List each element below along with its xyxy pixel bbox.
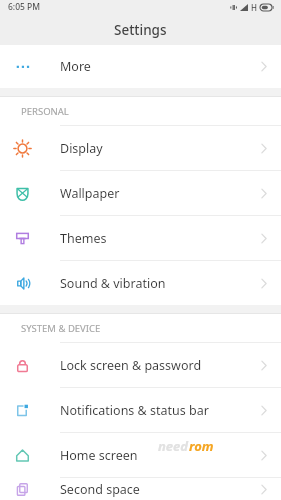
button[interactable]: Lock screen & password: [0, 343, 281, 387]
staticText: Notifications & status bar: [60, 402, 261, 419]
button[interactable]: Notifications & status bar: [0, 388, 281, 432]
staticText: SYSTEM & DEVICE: [21, 322, 101, 335]
button[interactable]: Second space: [0, 478, 281, 500]
staticText: Sound & vibration: [60, 275, 261, 292]
staticText: Display: [60, 140, 261, 157]
staticText: rom: [189, 437, 214, 455]
staticText: Second space: [60, 481, 261, 498]
staticText: Themes: [60, 230, 261, 247]
button[interactable]: Sound & vibration: [0, 261, 281, 305]
button[interactable]: Themes: [0, 216, 281, 260]
staticText: 6:05 PM: [8, 1, 41, 13]
staticText: PERSONAL: [21, 105, 69, 118]
staticText: Lock screen & password: [60, 357, 261, 374]
staticText: need: [158, 437, 189, 455]
staticText: More: [60, 58, 261, 75]
staticText: H: [251, 2, 257, 13]
button[interactable]: Wallpaper: [0, 171, 281, 215]
button[interactable]: Display: [0, 126, 281, 170]
staticText: Home screen: [60, 447, 261, 464]
staticText: Settings: [114, 21, 167, 39]
staticText: Wallpaper: [60, 185, 261, 202]
button[interactable]: Home screen: [0, 433, 281, 477]
button[interactable]: More: [0, 45, 281, 88]
